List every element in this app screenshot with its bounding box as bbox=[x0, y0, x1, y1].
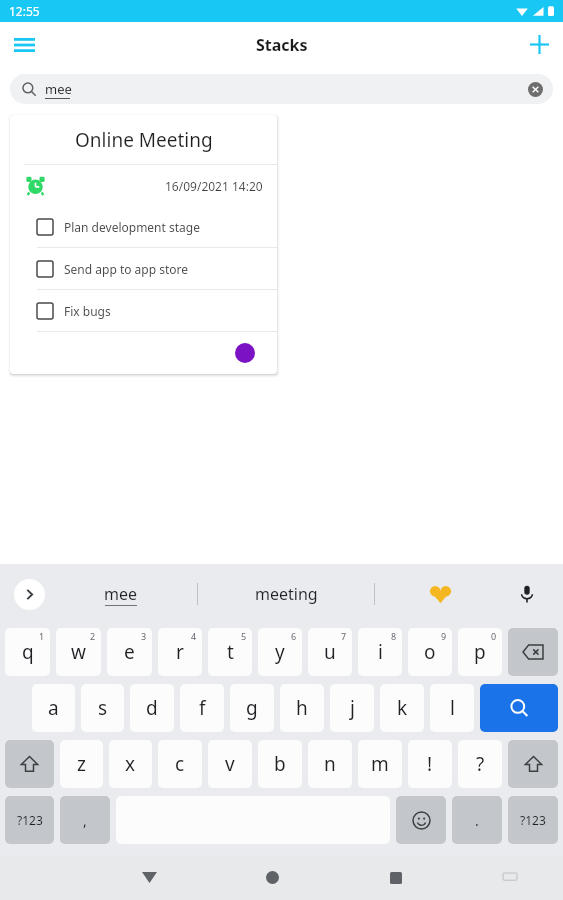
button[interactable]: Search bbox=[480, 684, 558, 732]
button[interactable]: j bbox=[330, 684, 374, 732]
button[interactable]: Home bbox=[211, 855, 334, 900]
button[interactable]: i bbox=[358, 628, 402, 676]
staticText: n bbox=[324, 751, 336, 777]
button[interactable]: f bbox=[180, 684, 224, 732]
staticText: 3 bbox=[141, 630, 147, 642]
staticText: x bbox=[125, 751, 136, 777]
staticText: 5 bbox=[241, 630, 247, 642]
button[interactable]: mee bbox=[45, 564, 197, 624]
staticText: 12:55 bbox=[9, 3, 40, 19]
staticText: 7 bbox=[341, 630, 347, 642]
button[interactable]: Emoji suggestion bbox=[375, 564, 505, 624]
button[interactable]: Voice input bbox=[505, 564, 549, 624]
staticText: l bbox=[450, 695, 455, 721]
staticText: ?123 bbox=[17, 812, 43, 828]
button[interactable]: l bbox=[430, 684, 474, 732]
button[interactable]: w bbox=[56, 628, 101, 676]
staticText: d bbox=[146, 695, 158, 721]
button[interactable]: ! bbox=[408, 740, 452, 788]
button[interactable]: Fix bugs bbox=[10, 290, 277, 331]
button[interactable]: Clear search bbox=[528, 82, 543, 97]
staticText: p bbox=[474, 639, 486, 665]
button[interactable]: . bbox=[452, 796, 502, 844]
button[interactable]: p bbox=[458, 628, 502, 676]
staticText: mee bbox=[104, 583, 138, 605]
button[interactable]: Stack colour bbox=[235, 343, 255, 363]
button[interactable]: Menu bbox=[0, 22, 48, 67]
button[interactable]: o bbox=[408, 628, 452, 676]
button[interactable]: t bbox=[208, 628, 252, 676]
button[interactable]: q bbox=[5, 628, 50, 676]
button[interactable]: b bbox=[258, 740, 302, 788]
button[interactable]: x bbox=[109, 740, 152, 788]
button[interactable]: z bbox=[60, 740, 103, 788]
staticText: ? bbox=[476, 751, 485, 777]
button[interactable]: Back bbox=[88, 855, 211, 900]
staticText: o bbox=[424, 639, 436, 665]
button[interactable]: r bbox=[158, 628, 202, 676]
staticText: g bbox=[246, 695, 258, 721]
staticText: . bbox=[475, 811, 479, 830]
button[interactable]: ?123 bbox=[5, 796, 54, 844]
staticText: r bbox=[176, 639, 184, 665]
button[interactable]: k bbox=[380, 684, 424, 732]
staticText: e bbox=[124, 639, 135, 665]
button[interactable]: ? bbox=[458, 740, 502, 788]
button[interactable]: d bbox=[130, 684, 174, 732]
staticText: a bbox=[48, 695, 59, 721]
staticText: 6 bbox=[291, 630, 297, 642]
staticText: u bbox=[324, 639, 336, 665]
staticText: h bbox=[296, 695, 308, 721]
staticText: Fix bugs bbox=[64, 303, 111, 319]
button[interactable]: Expand toolbar bbox=[14, 579, 45, 610]
staticText: t bbox=[227, 639, 234, 665]
staticText: z bbox=[77, 751, 86, 777]
staticText: 9 bbox=[441, 630, 447, 642]
staticText: ! bbox=[427, 751, 433, 777]
button[interactable]: Emoji bbox=[396, 796, 446, 844]
button[interactable]: ?123 bbox=[508, 796, 558, 844]
button[interactable]: Backspace bbox=[508, 628, 558, 676]
button[interactable]: Recent apps bbox=[334, 855, 457, 900]
staticText: meeting bbox=[255, 583, 318, 605]
button[interactable]: Online Meeting bbox=[10, 115, 277, 374]
button[interactable]: meeting bbox=[198, 564, 374, 624]
button[interactable]: y bbox=[258, 628, 302, 676]
button[interactable]: c bbox=[158, 740, 202, 788]
staticText: y bbox=[275, 639, 285, 665]
button[interactable]: Shift bbox=[508, 740, 558, 788]
staticText: ?123 bbox=[520, 812, 546, 828]
button[interactable]: g bbox=[230, 684, 274, 732]
button[interactable]: Shift bbox=[5, 740, 54, 788]
button[interactable]: u bbox=[308, 628, 352, 676]
button[interactable]: v bbox=[208, 740, 252, 788]
button[interactable]: e bbox=[107, 628, 152, 676]
button[interactable]: Send app to app store bbox=[10, 248, 277, 289]
button[interactable]: s bbox=[81, 684, 124, 732]
button[interactable]: a bbox=[32, 684, 75, 732]
staticText: 1 bbox=[39, 630, 45, 642]
staticText: q bbox=[22, 639, 34, 665]
staticText: 16/09/2021 14:20 bbox=[165, 178, 263, 194]
staticText: 8 bbox=[391, 630, 397, 642]
staticText: , bbox=[83, 811, 87, 830]
button[interactable]: m bbox=[358, 740, 402, 788]
staticText: mee bbox=[45, 80, 72, 98]
button[interactable]: mee bbox=[10, 74, 553, 104]
button[interactable]: Plan development stage bbox=[10, 206, 277, 247]
staticText: Online Meeting bbox=[75, 127, 213, 153]
staticText: s bbox=[98, 695, 108, 721]
staticText: 2 bbox=[90, 630, 96, 642]
button[interactable]: n bbox=[308, 740, 352, 788]
button[interactable]: Add stack bbox=[515, 22, 563, 67]
staticText: Stacks bbox=[256, 34, 308, 56]
staticText: Send app to app store bbox=[64, 261, 189, 277]
staticText: Plan development stage bbox=[64, 219, 200, 235]
staticText: j bbox=[350, 695, 355, 721]
staticText: 4 bbox=[191, 630, 197, 642]
staticText: 0 bbox=[491, 630, 497, 642]
button[interactable]: h bbox=[280, 684, 324, 732]
button[interactable]: , bbox=[60, 796, 110, 844]
